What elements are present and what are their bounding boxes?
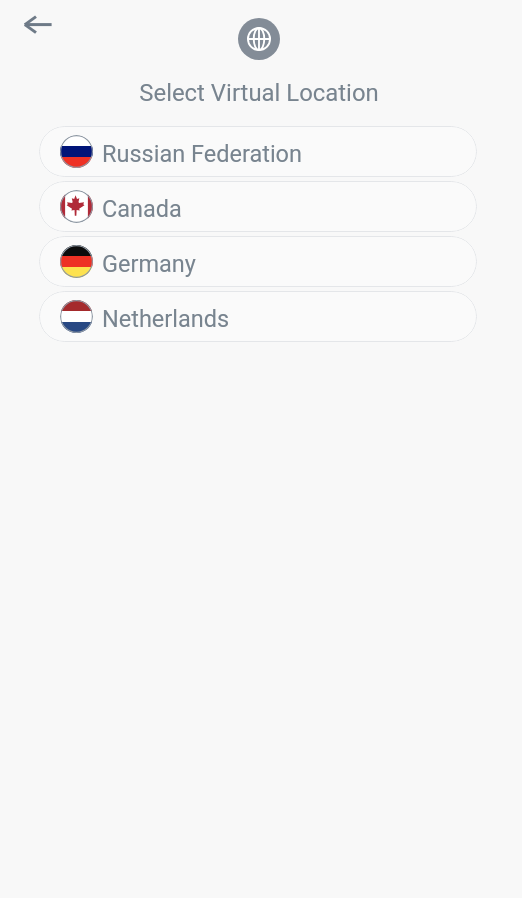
- staticText: Russian Federation: [102, 140, 302, 168]
- button[interactable]: Canada: [39, 181, 477, 232]
- staticText: Canada: [102, 195, 182, 223]
- button[interactable]: Globe: [238, 18, 280, 60]
- button[interactable]: Russian Federation: [39, 126, 477, 177]
- staticText: Select Virtual Location: [139, 79, 379, 107]
- button[interactable]: Back: [14, 1, 61, 48]
- staticText: Germany: [102, 250, 196, 278]
- staticText: Netherlands: [102, 305, 230, 333]
- button[interactable]: Germany: [39, 236, 477, 287]
- button[interactable]: Netherlands: [39, 291, 477, 342]
